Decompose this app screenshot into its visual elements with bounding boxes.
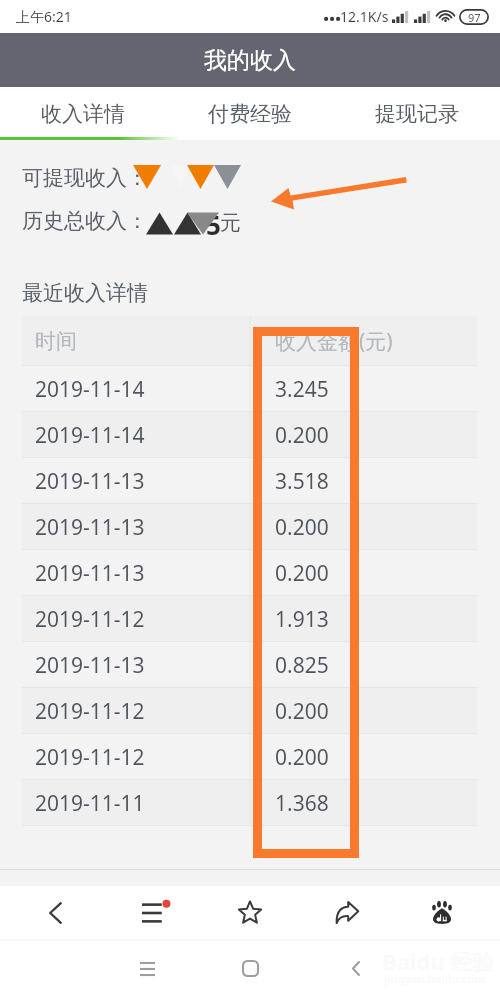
button[interactable]: Back bbox=[0, 886, 110, 939]
staticText: 3.245 bbox=[275, 375, 329, 404]
button[interactable]: 时间 bbox=[22, 316, 477, 366]
button[interactable]: Share bbox=[300, 886, 393, 939]
staticText: 0.200 bbox=[275, 743, 329, 772]
staticText: 0.200 bbox=[275, 513, 329, 542]
button[interactable]: 收入详情 bbox=[0, 87, 166, 140]
staticText: 历史总收入： bbox=[22, 208, 148, 234]
staticText: 2019-11-13 bbox=[35, 467, 145, 496]
staticText: 2019-11-11 bbox=[35, 789, 145, 818]
button[interactable]: Favorite bbox=[200, 886, 300, 939]
staticText: 2019-11-14 bbox=[35, 375, 145, 404]
button[interactable]: Recents bbox=[110, 941, 185, 1000]
button[interactable]: 2019-11-13 bbox=[22, 642, 477, 688]
staticText: 收入金额(元) bbox=[275, 327, 393, 356]
button[interactable]: Back bbox=[318, 941, 393, 1000]
button[interactable]: 2019-11-14 bbox=[22, 366, 477, 412]
staticText: 元 bbox=[220, 210, 241, 236]
staticText: 我的收入 bbox=[204, 46, 296, 75]
staticText: 5 bbox=[206, 207, 221, 242]
button[interactable]: Menu bbox=[110, 886, 200, 939]
staticText: 2019-11-13 bbox=[35, 559, 145, 588]
staticText: 上午6:21 bbox=[16, 7, 72, 26]
staticText: 2019-11-13 bbox=[35, 513, 145, 542]
staticText: 2019-11-12 bbox=[35, 743, 145, 772]
button[interactable]: 付费经验 bbox=[166, 87, 333, 140]
staticText: 0.825 bbox=[275, 651, 329, 680]
button[interactable]: 2019-11-11 bbox=[22, 780, 477, 826]
staticText: 3.518 bbox=[275, 467, 329, 496]
staticText: 最近收入详情 bbox=[22, 280, 148, 306]
button[interactable]: 2019-11-13 bbox=[22, 458, 477, 504]
staticText: 12.1K/s bbox=[340, 7, 389, 26]
button[interactable]: 2019-11-13 bbox=[22, 550, 477, 596]
staticText: 付费经验 bbox=[208, 101, 292, 127]
button[interactable]: 2019-11-12 bbox=[22, 688, 477, 734]
button[interactable]: Baidu bbox=[388, 886, 495, 939]
staticText: 可提现收入： bbox=[22, 165, 148, 191]
staticText: 0.200 bbox=[275, 421, 329, 450]
staticText: 1.913 bbox=[275, 605, 329, 634]
staticText: 0.200 bbox=[275, 697, 329, 726]
button[interactable]: 提现记录 bbox=[333, 87, 500, 140]
staticText: 0.200 bbox=[275, 559, 329, 588]
staticText: 提现记录 bbox=[375, 101, 459, 127]
button[interactable]: 2019-11-13 bbox=[22, 504, 477, 550]
button[interactable]: 2019-11-12 bbox=[22, 596, 477, 642]
staticText: 2019-11-13 bbox=[35, 651, 145, 680]
staticText: 2019-11-12 bbox=[35, 697, 145, 726]
button[interactable]: 2019-11-14 bbox=[22, 412, 477, 458]
staticText: 收入详情 bbox=[41, 101, 125, 127]
staticText: 1.368 bbox=[275, 789, 329, 818]
staticText: 97 bbox=[468, 10, 481, 25]
button[interactable]: 2019-11-12 bbox=[22, 734, 477, 780]
button[interactable]: Home bbox=[213, 941, 288, 1000]
staticText: 2019-11-14 bbox=[35, 421, 145, 450]
staticText: 时间 bbox=[35, 328, 77, 354]
staticText: 2019-11-12 bbox=[35, 605, 145, 634]
